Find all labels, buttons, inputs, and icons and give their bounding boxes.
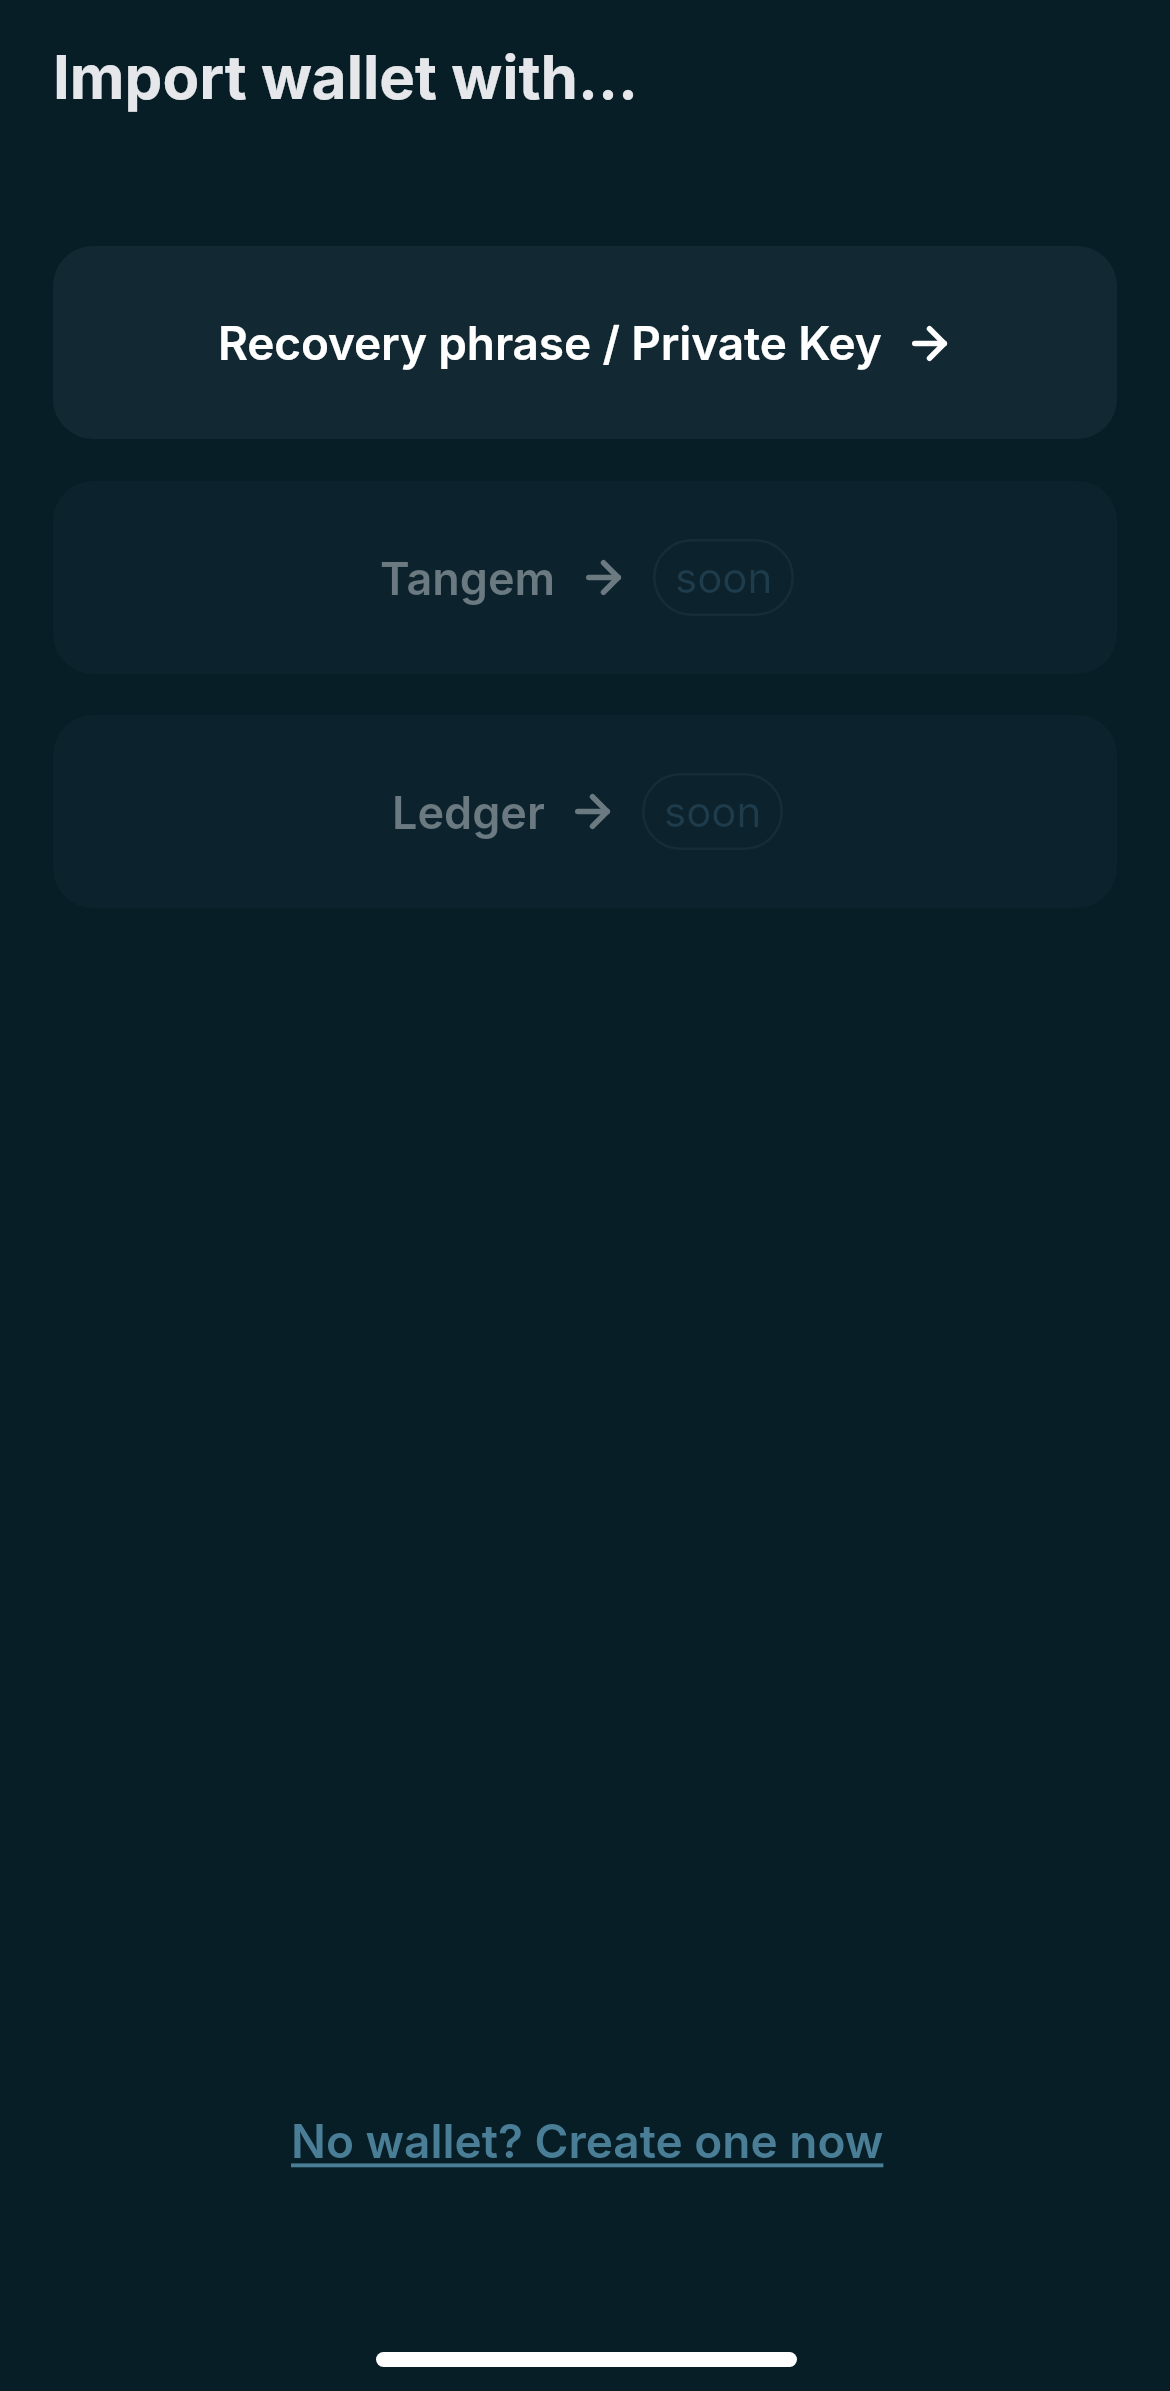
- staticText: Recovery phrase / Private Key: [218, 315, 882, 371]
- staticText: soon: [675, 552, 773, 603]
- staticText: Ledger: [392, 785, 545, 839]
- button[interactable]: Ledger: [53, 715, 1117, 908]
- staticText: soon: [664, 786, 762, 837]
- other: Continue: [575, 794, 610, 829]
- staticText: Tangem: [380, 551, 556, 605]
- button[interactable]: No wallet? Create one now: [291, 2113, 884, 2169]
- staticText: Import wallet with...: [53, 41, 638, 114]
- other: Continue: [912, 326, 947, 361]
- other: Continue: [586, 560, 621, 595]
- button[interactable]: Tangem: [53, 481, 1117, 674]
- button[interactable]: Recovery phrase / Private Key: [53, 246, 1117, 439]
